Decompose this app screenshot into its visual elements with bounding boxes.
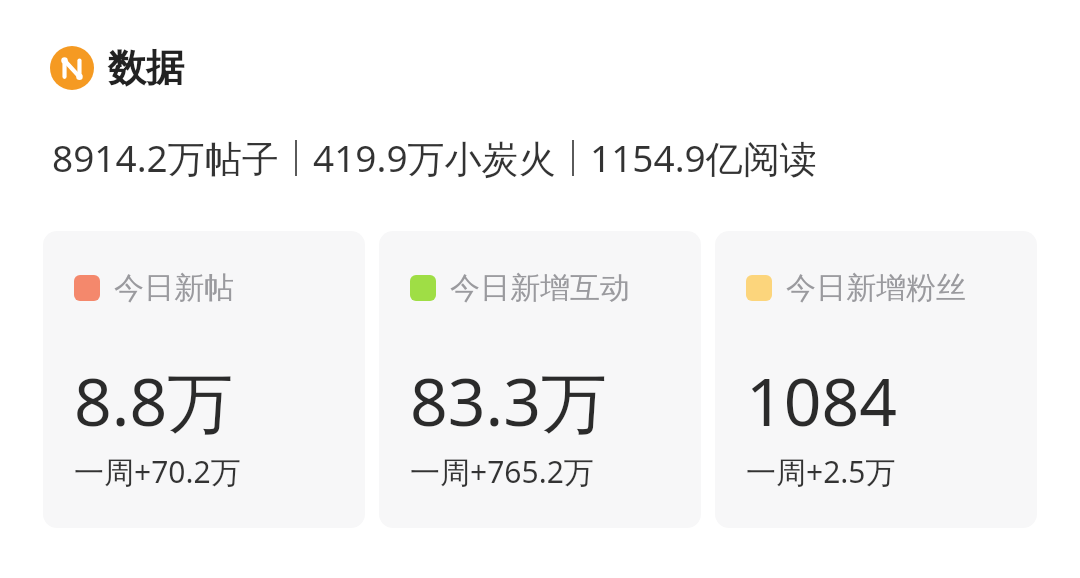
- staticText: 419.9万小炭火: [313, 132, 556, 183]
- staticText: 一周+2.5万: [746, 451, 896, 492]
- staticText: 今日新帖: [114, 269, 234, 307]
- button[interactable]: 8914.2万帖子: [52, 132, 817, 183]
- button[interactable]: 数据: [50, 44, 196, 92]
- staticText: 一周+765.2万: [410, 451, 594, 492]
- staticText: 8.8万: [74, 355, 234, 445]
- staticText: 83.3万: [410, 355, 607, 445]
- button[interactable]: 今日新增互动: [379, 231, 701, 528]
- button[interactable]: 今日新帖: [43, 231, 365, 528]
- staticText: 8914.2万帖子: [52, 132, 279, 183]
- staticText: 今日新增粉丝: [786, 269, 966, 307]
- staticText: 今日新增互动: [450, 269, 630, 307]
- button[interactable]: 今日新增粉丝: [715, 231, 1037, 528]
- staticText: 1084: [746, 355, 898, 445]
- staticText: 数据: [108, 44, 184, 92]
- staticText: 一周+70.2万: [74, 451, 241, 492]
- staticText: 1154.9亿阅读: [590, 132, 817, 183]
- other: 数据: [50, 46, 94, 90]
